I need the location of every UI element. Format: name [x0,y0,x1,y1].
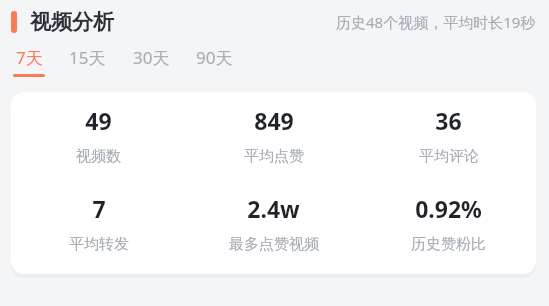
staticText: 7 [92,193,106,224]
staticText: 0.92% [415,193,482,224]
button[interactable]: 90天 [194,44,235,79]
staticText: 视频数 [76,147,121,166]
staticText: 历史48个视频，平均时长19秒 [336,12,536,32]
button[interactable]: 30天 [131,44,172,79]
staticText: 平均评论 [419,147,479,166]
button[interactable]: 2.4w [186,193,361,254]
button[interactable]: 7 [11,193,186,254]
staticText: 平均转发 [69,235,129,254]
staticText: 849 [254,105,294,136]
staticText: 36 [435,105,462,136]
staticText: 30天 [133,46,170,69]
button[interactable]: 7天 [11,44,47,79]
staticText: 历史赞粉比 [411,235,486,254]
button[interactable]: 15天 [67,44,108,79]
staticText: 90天 [196,46,233,69]
button[interactable]: 36 [361,105,536,166]
staticText: 最多点赞视频 [229,235,319,254]
staticText: 视频分析 [30,9,114,35]
staticText: 15天 [69,46,106,69]
staticText: 49 [85,105,112,136]
staticText: 2.4w [247,193,300,224]
staticText: 平均点赞 [244,147,304,166]
button[interactable]: 849 [186,105,361,166]
staticText: 7天 [16,46,43,69]
button[interactable]: 49 [11,105,186,166]
button[interactable]: 0.92% [361,193,536,254]
